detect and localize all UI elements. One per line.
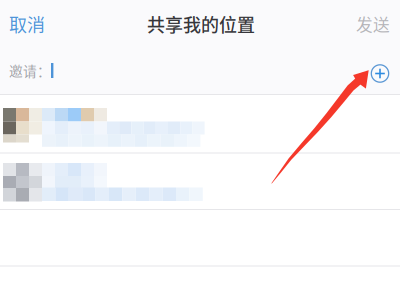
- staticText: 发送: [356, 12, 390, 36]
- button[interactable]: 取消: [9, 2, 71, 46]
- staticText: 邀请：: [9, 61, 51, 80]
- staticText: 共享我的位置: [147, 11, 255, 37]
- button[interactable]: Add contact: [365, 58, 395, 88]
- button[interactable]: 发送: [328, 2, 390, 46]
- staticText: 取消: [9, 11, 45, 37]
